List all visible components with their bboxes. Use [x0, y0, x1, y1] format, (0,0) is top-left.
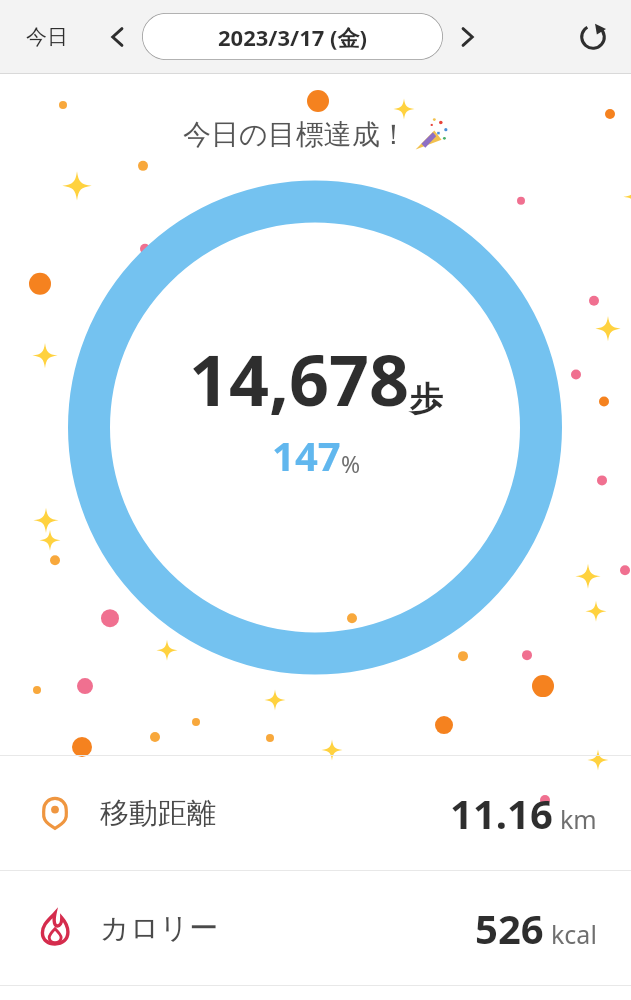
button[interactable]: 移動距離: [0, 756, 631, 870]
staticText: kcal: [551, 917, 597, 951]
staticText: 歩: [410, 378, 443, 420]
button[interactable]: 前の日: [98, 17, 138, 57]
staticText: 今日: [26, 24, 68, 50]
button[interactable]: 更新: [569, 13, 617, 61]
staticText: %: [341, 448, 361, 479]
button[interactable]: 次の日: [447, 17, 487, 57]
staticText: カロリー: [100, 910, 219, 947]
staticText: 14,678: [189, 331, 410, 426]
button[interactable]: 今日: [14, 16, 80, 58]
staticText: 移動距離: [100, 795, 216, 832]
staticText: 11.16: [450, 786, 553, 840]
staticText: 526: [475, 901, 544, 955]
button[interactable]: カロリー: [0, 871, 631, 985]
staticText: 2023/3/17 (金): [218, 22, 367, 52]
staticText: 147: [272, 428, 341, 482]
staticText: km: [560, 802, 597, 836]
staticText: 今日の目標達成！: [183, 117, 408, 152]
button[interactable]: 2023/3/17 (金): [142, 13, 443, 60]
